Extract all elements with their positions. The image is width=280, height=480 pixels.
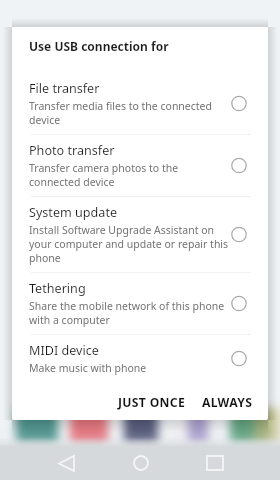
button[interactable]: Home: [124, 446, 158, 480]
button[interactable]: File transfer: [12, 73, 268, 134]
staticText: JUST ONCE: [118, 394, 186, 411]
staticText: Make music with phone: [29, 361, 147, 375]
staticText: MIDI device: [29, 342, 99, 359]
staticText: System update: [29, 204, 118, 221]
staticText: Photo transfer: [29, 142, 115, 159]
button[interactable]: Tethering: [12, 273, 268, 334]
button[interactable]: MIDI device: [12, 335, 268, 382]
button[interactable]: System update: [12, 197, 268, 272]
button[interactable]: JUST ONCE: [115, 390, 189, 415]
staticText: File transfer: [29, 80, 100, 97]
button[interactable]: Photo transfer: [12, 135, 268, 196]
staticText: Share the mobile network of this phone w…: [29, 299, 231, 327]
staticText: Use USB connection for: [29, 38, 169, 54]
staticText: Tethering: [29, 280, 86, 297]
staticText: Install Software Upgrade Assistant on yo…: [29, 223, 231, 265]
button[interactable]: ALWAYS: [199, 390, 256, 415]
staticText: Transfer camera photos to the connected …: [29, 161, 231, 189]
staticText: Transfer media files to the connected de…: [29, 99, 231, 127]
staticText: ALWAYS: [202, 394, 253, 411]
button[interactable]: Back: [49, 446, 83, 480]
button[interactable]: Recents: [198, 446, 232, 480]
